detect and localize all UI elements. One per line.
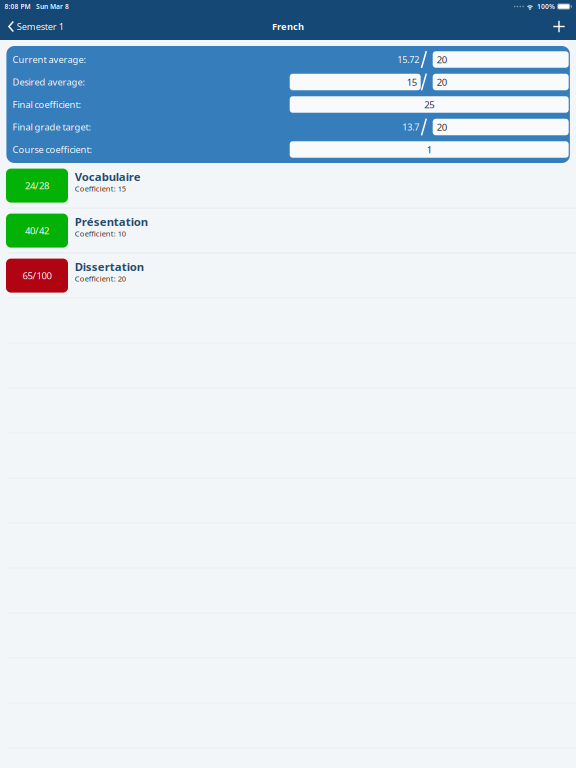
staticText: Vocabulaire xyxy=(75,169,141,184)
staticText: French xyxy=(272,20,304,33)
staticText: 20 xyxy=(437,53,447,66)
staticText: 65/100 xyxy=(22,269,51,282)
staticText: Coefficient: 15 xyxy=(75,183,126,194)
staticText: Coefficient: 20 xyxy=(75,273,126,284)
staticText: 20 xyxy=(437,75,447,89)
staticText: Dissertation xyxy=(75,259,144,274)
staticText: Current average: xyxy=(13,53,87,66)
staticText: Semester 1 xyxy=(17,20,64,33)
staticText: 40/42 xyxy=(25,224,49,237)
staticText: 100% xyxy=(537,2,555,11)
button[interactable]: 65/100 xyxy=(0,253,576,298)
staticText: Final coefficient: xyxy=(13,98,82,111)
button[interactable]: 24/28 xyxy=(0,163,576,208)
staticText: 24/28 xyxy=(25,179,49,192)
staticText: 1 xyxy=(427,143,432,156)
staticText: 15.72 xyxy=(397,53,419,66)
button[interactable]: 40/42 xyxy=(0,208,576,253)
staticText: 15 xyxy=(407,75,417,89)
staticText: 20 xyxy=(437,120,447,134)
staticText: 8:08 PM xyxy=(4,2,30,11)
staticText: Présentation xyxy=(75,214,148,229)
button[interactable]: Add xyxy=(545,13,573,40)
staticText: Course coefficient: xyxy=(13,143,93,156)
staticText: Final grade target: xyxy=(13,121,92,133)
staticText: 13.7 xyxy=(402,121,419,133)
staticText: Desired average: xyxy=(13,76,86,88)
staticText: Coefficient: 10 xyxy=(75,228,126,239)
staticText: 25 xyxy=(424,98,434,111)
button[interactable]: Semester 1 xyxy=(0,13,70,40)
staticText: Sun Mar 8 xyxy=(36,2,69,11)
